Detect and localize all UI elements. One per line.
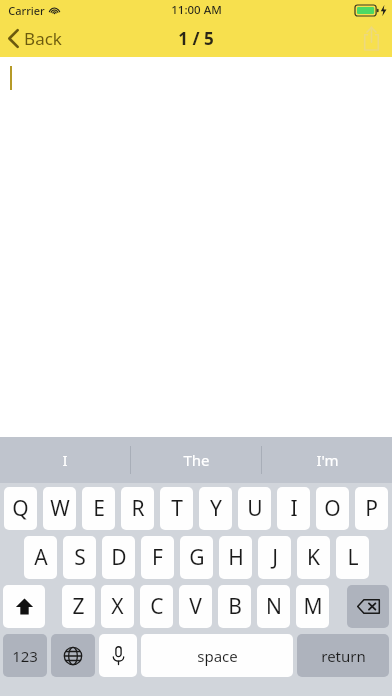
- button[interactable]: return: [297, 634, 389, 677]
- button[interactable]: T: [160, 487, 193, 530]
- button[interactable]: W: [43, 487, 76, 530]
- button[interactable]: J: [258, 536, 291, 579]
- button[interactable]: S: [63, 536, 96, 579]
- staticText: The: [183, 450, 210, 470]
- button[interactable]: space: [141, 634, 293, 677]
- staticText: Z: [72, 592, 85, 621]
- button[interactable]: L: [336, 536, 369, 579]
- staticText: R: [131, 494, 145, 523]
- staticText: H: [228, 543, 244, 572]
- button[interactable]: Dictation: [99, 634, 137, 677]
- button[interactable]: P: [355, 487, 388, 530]
- staticText: K: [307, 543, 320, 572]
- button[interactable]: H: [219, 536, 252, 579]
- staticText: 123: [12, 646, 38, 666]
- button[interactable]: M: [296, 585, 329, 628]
- staticText: space: [197, 646, 238, 666]
- button[interactable]: R: [121, 487, 154, 530]
- staticText: T: [171, 494, 183, 523]
- button[interactable]: I: [277, 487, 310, 530]
- button[interactable]: The: [131, 437, 261, 483]
- staticText: S: [74, 543, 86, 572]
- button[interactable]: E: [82, 487, 115, 530]
- staticText: C: [150, 592, 164, 621]
- staticText: A: [34, 543, 48, 572]
- button[interactable]: X: [101, 585, 134, 628]
- staticText: U: [247, 494, 263, 523]
- staticText: I: [62, 450, 68, 470]
- button[interactable]: Back: [0, 23, 74, 54]
- button[interactable]: B: [218, 585, 251, 628]
- button[interactable]: D: [102, 536, 135, 579]
- staticText: return: [321, 646, 366, 666]
- button[interactable]: Y: [199, 487, 232, 530]
- staticText: O: [324, 494, 341, 523]
- staticText: L: [347, 543, 359, 572]
- staticText: W: [50, 494, 70, 523]
- button[interactable]: Share: [351, 22, 392, 55]
- staticText: 11:00 AM: [171, 2, 222, 18]
- button[interactable]: Z: [62, 585, 95, 628]
- button[interactable]: F: [141, 536, 174, 579]
- button[interactable]: Shift: [3, 585, 45, 628]
- staticText: P: [365, 494, 378, 523]
- button[interactable]: C: [140, 585, 173, 628]
- staticText: B: [228, 592, 242, 621]
- button[interactable]: U: [238, 487, 271, 530]
- staticText: M: [303, 592, 323, 621]
- staticText: Back: [24, 27, 62, 50]
- button[interactable]: V: [179, 585, 212, 628]
- staticText: X: [111, 592, 124, 621]
- button[interactable]: 123: [3, 634, 47, 677]
- button[interactable]: Backspace: [347, 585, 389, 628]
- staticText: Q: [12, 494, 29, 523]
- staticText: J: [272, 543, 278, 572]
- staticText: E: [93, 494, 105, 523]
- staticText: Y: [210, 494, 222, 523]
- button[interactable]: I'm: [262, 437, 392, 483]
- button[interactable]: K: [297, 536, 330, 579]
- staticText: I: [290, 494, 298, 523]
- staticText: I'm: [316, 450, 339, 470]
- button[interactable]: Change keyboard: [51, 634, 95, 677]
- staticText: Carrier: [8, 3, 45, 18]
- staticText: D: [111, 543, 127, 572]
- staticText: G: [189, 543, 205, 572]
- staticText: N: [266, 592, 282, 621]
- button[interactable]: I: [0, 437, 130, 483]
- staticText: V: [189, 592, 202, 621]
- button[interactable]: N: [257, 585, 290, 628]
- staticText: 1 / 5: [178, 27, 214, 50]
- button[interactable]: O: [316, 487, 349, 530]
- button[interactable]: A: [24, 536, 57, 579]
- staticText: F: [152, 543, 163, 572]
- button[interactable]: G: [180, 536, 213, 579]
- button[interactable]: Q: [4, 487, 37, 530]
